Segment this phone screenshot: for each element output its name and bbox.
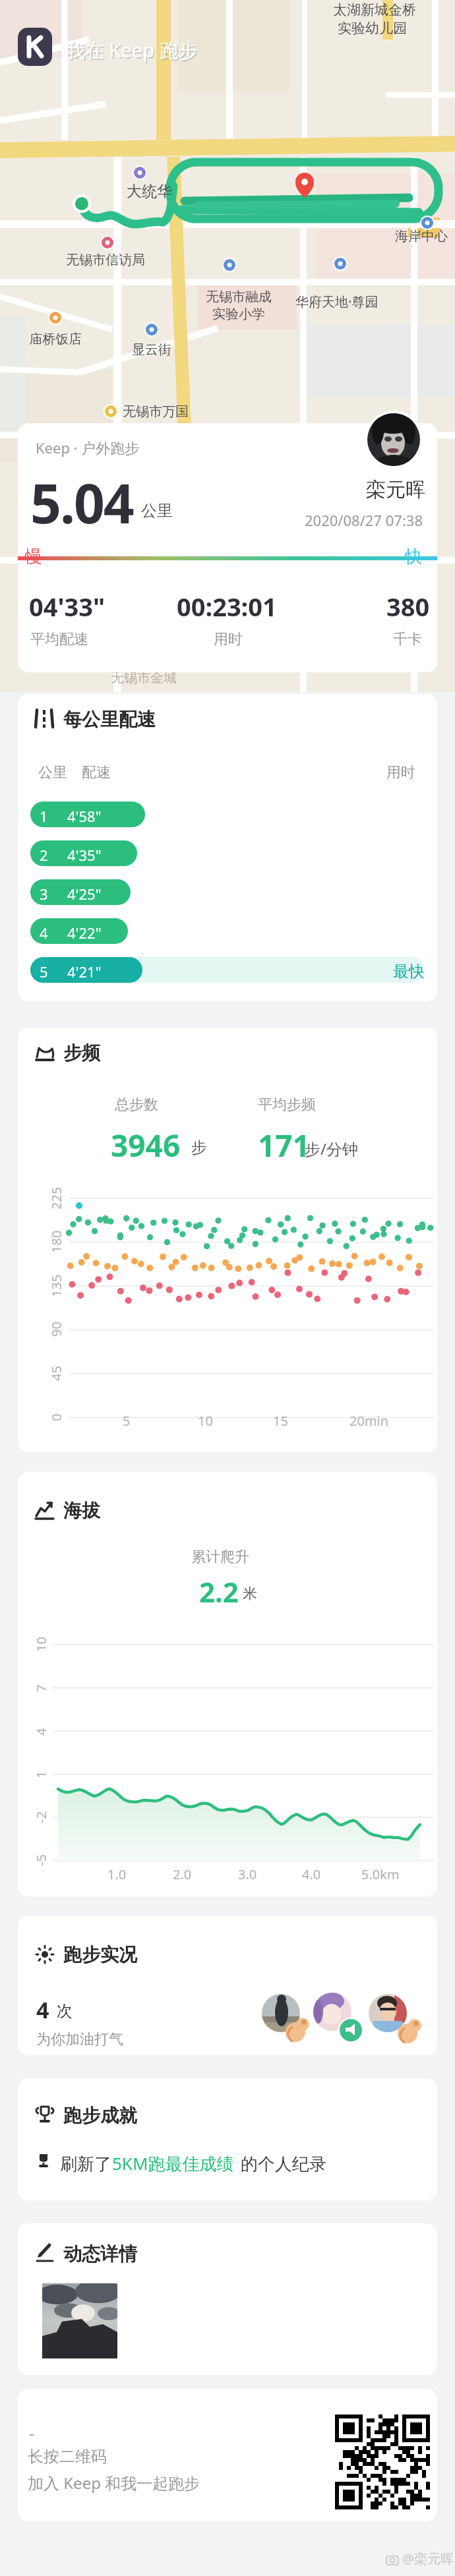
staticText: 5.04 bbox=[30, 465, 133, 539]
staticText: 4'35" bbox=[67, 845, 102, 865]
button[interactable] bbox=[18, 694, 437, 1001]
staticText: 5.0km bbox=[361, 1865, 400, 1883]
staticText: Keep · 户外跑步 bbox=[36, 438, 140, 457]
staticText: 步频 bbox=[63, 1041, 100, 1065]
staticText: 2.2 bbox=[199, 1573, 239, 1610]
staticText: 90 bbox=[47, 1322, 65, 1337]
staticText: 4 bbox=[32, 1728, 50, 1736]
button[interactable] bbox=[18, 2223, 437, 2375]
staticText: 4'22" bbox=[67, 923, 102, 943]
staticText: 4.0 bbox=[302, 1865, 321, 1883]
staticText: 无锡市融成 bbox=[206, 289, 272, 305]
staticText: 171 bbox=[258, 1125, 310, 1166]
staticText: 长按二维码 bbox=[28, 2447, 107, 2467]
staticText: 我在 Keep 跑步 bbox=[67, 38, 199, 65]
staticText: 5KM跑最佳成绩 bbox=[112, 2152, 234, 2175]
staticText: 20min bbox=[349, 1412, 389, 1430]
staticText: 庙桥饭店 bbox=[29, 331, 82, 347]
button[interactable] bbox=[18, 2078, 437, 2200]
button[interactable] bbox=[18, 1472, 437, 1896]
staticText: 7 bbox=[32, 1684, 50, 1692]
staticText: 3 bbox=[40, 884, 48, 904]
staticText: 380 bbox=[386, 589, 430, 624]
staticText: 我在 Keep 跑步 bbox=[66, 37, 198, 63]
staticText: 3946 bbox=[111, 1125, 181, 1166]
staticText: 4 bbox=[36, 1995, 49, 2025]
staticText: 5 bbox=[123, 1412, 131, 1430]
staticText: 用时 bbox=[214, 630, 243, 649]
staticText: 0 bbox=[47, 1413, 65, 1421]
staticText: -2 bbox=[32, 1811, 50, 1823]
button[interactable] bbox=[18, 423, 437, 672]
staticText: 总步数 bbox=[115, 1096, 158, 1114]
staticText: 225 bbox=[47, 1186, 65, 1210]
staticText: 用时 bbox=[386, 763, 415, 782]
staticText: 显云街 bbox=[132, 341, 171, 358]
staticText: 海拔 bbox=[63, 1499, 100, 1522]
staticText: 2020/08/27 07:38 bbox=[305, 510, 423, 530]
staticText: 太湖新城金桥 bbox=[333, 1, 416, 18]
staticText: 千卡 bbox=[393, 630, 422, 649]
staticText: 步 bbox=[191, 1138, 207, 1157]
staticText: 公里 bbox=[38, 763, 67, 782]
staticText: 15 bbox=[273, 1412, 288, 1430]
button[interactable] bbox=[18, 1028, 437, 1452]
staticText: 华府天地·尊园 bbox=[295, 293, 379, 310]
staticText: 的个人纪录 bbox=[236, 2152, 326, 2175]
staticText: 无锡市信访局 bbox=[66, 252, 145, 268]
staticText: 4'25" bbox=[67, 884, 102, 904]
staticText: 平均配速 bbox=[30, 630, 88, 649]
staticText: 快 bbox=[405, 546, 422, 568]
staticText: 2 bbox=[40, 845, 48, 865]
staticText: 2.0 bbox=[173, 1865, 192, 1883]
staticText: 无锡市金城 bbox=[111, 670, 177, 686]
staticText: 10 bbox=[32, 1637, 50, 1652]
staticText: 跑步实况 bbox=[63, 1943, 137, 1966]
staticText: 1.0 bbox=[107, 1865, 127, 1883]
staticText: 米 bbox=[243, 1585, 257, 1603]
staticText: 4 bbox=[40, 923, 48, 943]
button[interactable] bbox=[18, 1916, 437, 2055]
staticText: 跑步成就 bbox=[63, 2104, 137, 2127]
staticText: 公里 bbox=[141, 501, 173, 521]
staticText: 45 bbox=[47, 1366, 65, 1381]
staticText: 大统华 bbox=[127, 182, 172, 201]
staticText: 实验小学 bbox=[212, 306, 265, 322]
staticText: 实验幼儿园 bbox=[338, 20, 407, 37]
staticText: 海岸中心 bbox=[395, 228, 448, 245]
staticText: 慢 bbox=[25, 546, 42, 568]
staticText: 刷新了 bbox=[60, 2152, 116, 2175]
staticText: 平均步频 bbox=[258, 1096, 316, 1114]
staticText: 次 bbox=[57, 2001, 73, 2021]
staticText: 步/分钟 bbox=[305, 1138, 358, 1159]
staticText: @栾元晖 bbox=[402, 2550, 454, 2567]
staticText: 配速 bbox=[82, 763, 111, 782]
staticText: - bbox=[29, 2422, 34, 2444]
staticText: 4'21" bbox=[67, 962, 102, 981]
staticText: 00:23:01 bbox=[177, 589, 277, 624]
button[interactable] bbox=[18, 2389, 437, 2521]
staticText: 加入 Keep 和我一起跑步 bbox=[28, 2472, 200, 2494]
staticText: 1 bbox=[40, 806, 48, 826]
staticText: 累计爬升 bbox=[191, 1548, 249, 1566]
staticText: 栾元晖 bbox=[366, 477, 425, 502]
staticText: 135 bbox=[47, 1274, 65, 1297]
staticText: 1 bbox=[32, 1771, 50, 1778]
staticText: 5 bbox=[40, 962, 48, 981]
staticText: 10 bbox=[198, 1412, 213, 1430]
staticText: 最快 bbox=[393, 962, 425, 981]
staticText: 180 bbox=[47, 1230, 65, 1253]
staticText: 3.0 bbox=[238, 1865, 257, 1883]
staticText: 4'58" bbox=[67, 806, 102, 826]
staticText: 无锡市万国 bbox=[123, 403, 189, 420]
staticText: 为你加油打气 bbox=[36, 2030, 123, 2049]
staticText: -5 bbox=[32, 1854, 50, 1866]
staticText: 动态详情 bbox=[63, 2242, 137, 2266]
staticText: 04'33" bbox=[29, 589, 106, 624]
staticText: 每公里配速 bbox=[63, 708, 156, 731]
